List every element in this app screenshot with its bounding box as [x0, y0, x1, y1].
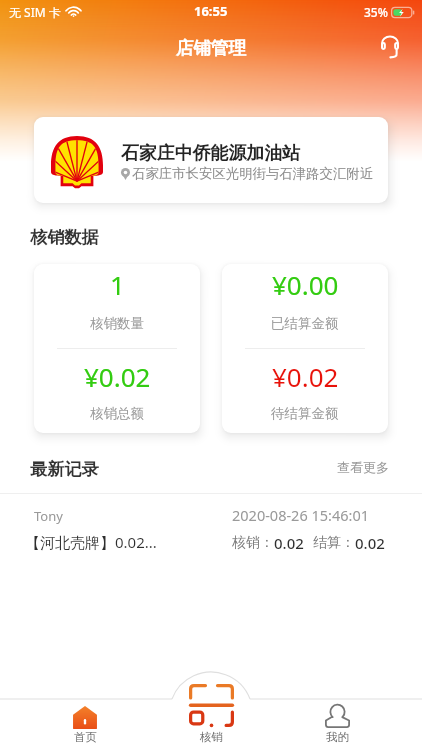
staticText: 待结算金额 — [271, 405, 339, 422]
button[interactable]: Tony — [0, 494, 422, 567]
button[interactable]: 1 — [34, 264, 200, 433]
button[interactable]: 石家庄中侨能源加油站 — [34, 117, 388, 203]
button[interactable]: 查看更多 — [333, 455, 393, 479]
staticText: 查看更多 — [337, 459, 389, 475]
staticText: Tony — [34, 507, 63, 525]
staticText: 1 — [110, 267, 125, 302]
staticText: 最新记录 — [30, 458, 99, 480]
button[interactable]: 我的 — [307, 700, 367, 748]
staticText: ¥0.00 — [272, 267, 339, 302]
staticText: 0.02 — [355, 533, 385, 553]
staticText: 【河北壳牌】0.02... — [25, 532, 157, 552]
staticText: 无 SIM 卡 — [9, 4, 61, 20]
staticText: 16:55 — [194, 2, 228, 20]
staticText: ¥0.02 — [84, 359, 151, 394]
button[interactable]: 核销 — [181, 682, 241, 748]
staticText: 核销： — [232, 534, 274, 552]
staticText: 我的 — [326, 730, 349, 744]
staticText: 石家庄中侨能源加油站 — [121, 142, 300, 165]
button[interactable]: ¥0.00 — [222, 264, 388, 433]
staticText: ¥0.02 — [272, 359, 339, 394]
staticText: 35% — [364, 4, 388, 20]
staticText: 0.02 — [274, 533, 304, 553]
staticText: 核销数据 — [30, 226, 99, 248]
staticText: 结算： — [313, 534, 355, 552]
staticText: 店铺管理 — [176, 37, 246, 59]
button[interactable]: 客服 — [375, 32, 405, 62]
staticText: 已结算金额 — [271, 315, 339, 332]
staticText: 核销总额 — [90, 405, 144, 422]
staticText: 核销数量 — [90, 315, 144, 332]
staticText: 2020-08-26 15:46:01 — [232, 505, 369, 525]
staticText: 石家庄市长安区光明街与石津路交汇附近 — [132, 165, 374, 182]
button[interactable]: 首页 — [55, 700, 115, 748]
staticText: 核销 — [200, 730, 223, 744]
staticText: 首页 — [74, 730, 97, 744]
